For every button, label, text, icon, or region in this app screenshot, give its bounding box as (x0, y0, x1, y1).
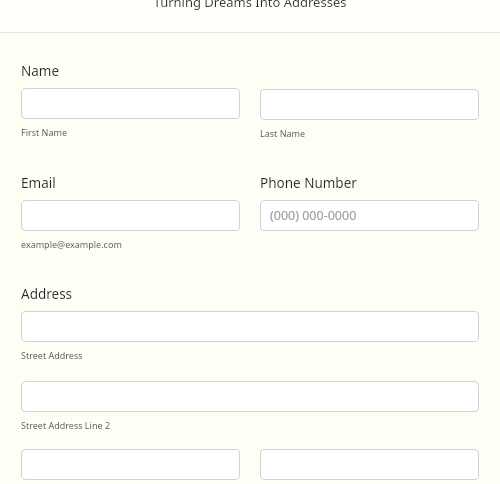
staticText: Street Address (21, 349, 83, 361)
staticText: example@example.com (21, 238, 122, 250)
staticText: Turning Dreams Into Addresses (0, 0, 500, 11)
staticText: Email (21, 174, 56, 192)
staticText: (000) 000-0000 (270, 207, 357, 224)
staticText: First Name (21, 126, 67, 138)
staticText: Phone Number (260, 174, 357, 192)
staticText: Street Address Line 2 (21, 419, 111, 431)
staticText: Address (21, 285, 73, 303)
button[interactable]: Email (21, 200, 240, 231)
button[interactable]: Street Address (21, 311, 479, 342)
button[interactable]: Street Address Line 2 (21, 381, 479, 412)
button[interactable]: State (260, 449, 479, 480)
staticText: Name (21, 62, 60, 80)
button[interactable]: Phone Number (260, 200, 479, 231)
button[interactable]: First Name (21, 88, 240, 119)
staticText: Last Name (260, 127, 306, 139)
button[interactable]: Last Name (260, 89, 479, 120)
button[interactable]: City (21, 449, 240, 480)
